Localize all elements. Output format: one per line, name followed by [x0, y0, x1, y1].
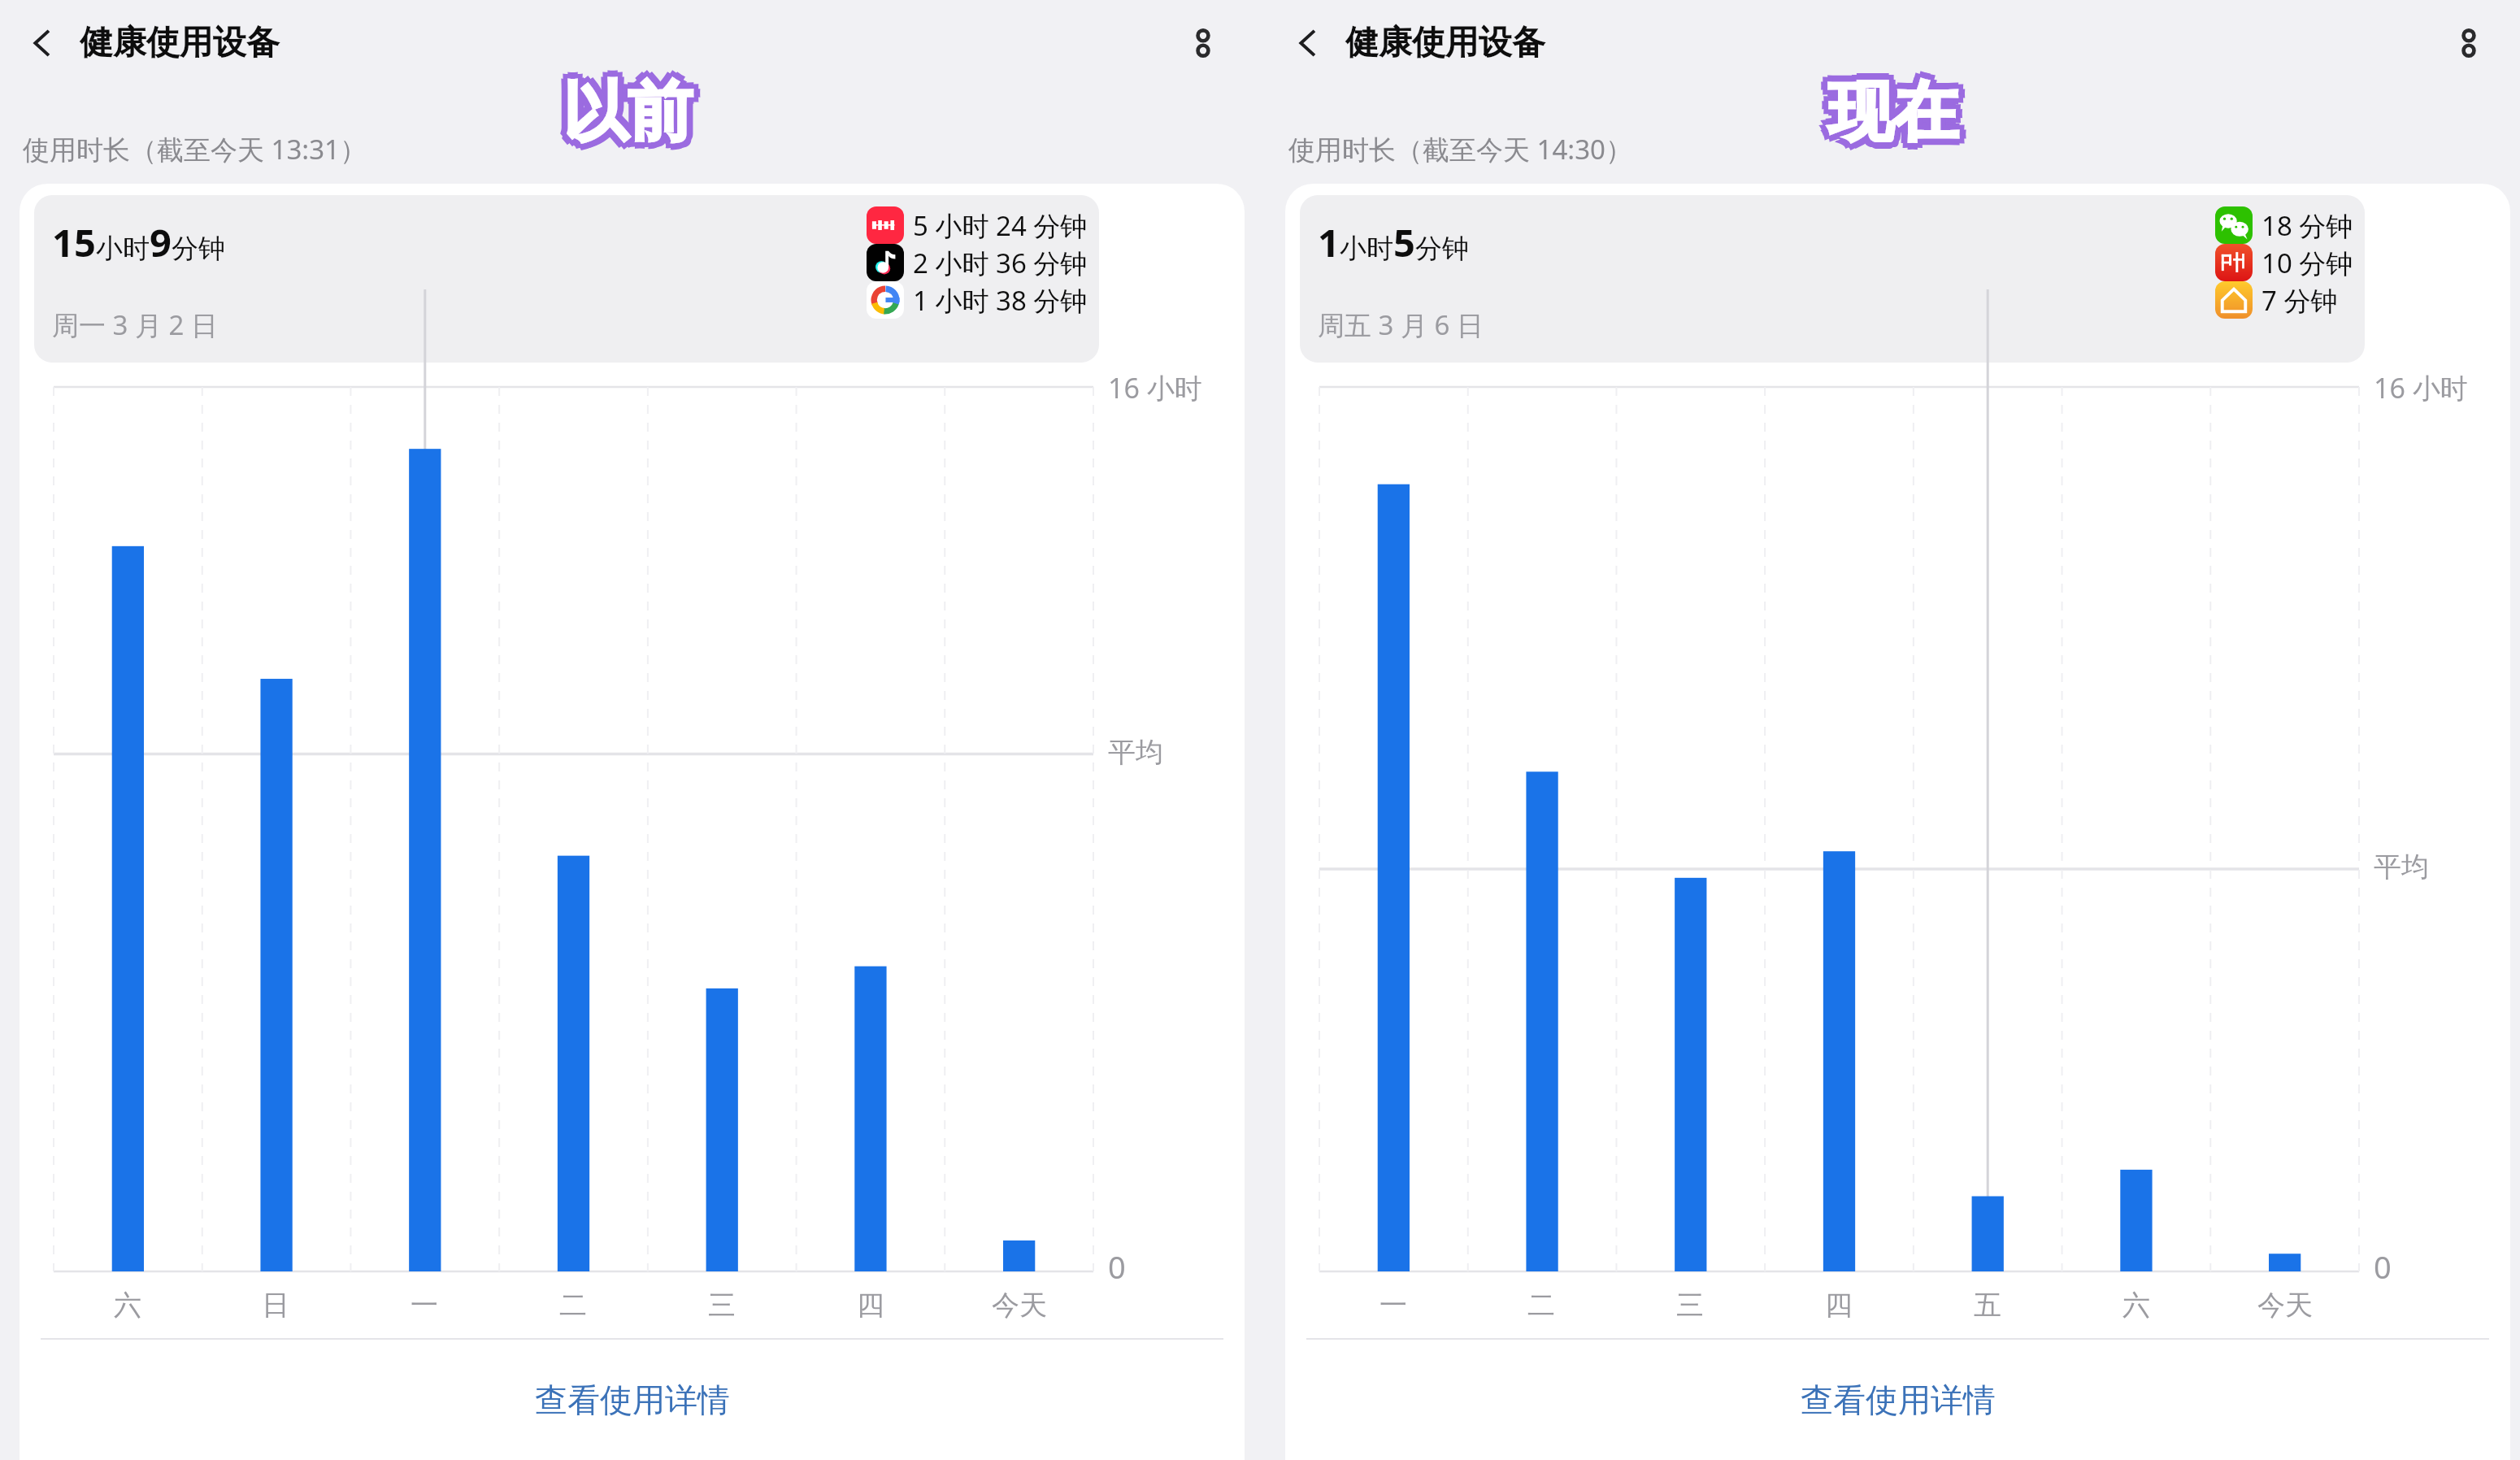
staticText: 以前 — [563, 67, 693, 150]
staticText: 现在 — [1832, 76, 1962, 158]
staticText: 1 小时 38 分钟 — [913, 282, 1088, 319]
staticText: 今天 — [2257, 1288, 2313, 1323]
staticText: 二 — [1527, 1288, 1555, 1323]
staticText: 以前 — [556, 72, 686, 154]
staticText: 10 分钟 — [2261, 245, 2353, 281]
staticText: 以前 — [563, 76, 693, 158]
staticText: 三 — [708, 1288, 736, 1323]
staticText: 现在 — [1833, 76, 1963, 159]
staticText: 周五 3 月 6 日 — [1318, 306, 1484, 343]
staticText: 以前 — [567, 76, 697, 158]
staticText: 现在 — [1828, 78, 1958, 160]
staticText: 以前 — [567, 67, 697, 150]
staticText: 以前 — [563, 78, 693, 160]
staticText: 0 — [2374, 1245, 2392, 1288]
staticText: 四 — [857, 1288, 884, 1323]
staticText: 16 小时 — [2374, 369, 2468, 406]
staticText: 现在 — [1828, 76, 1958, 158]
button[interactable]: 返回 — [16, 17, 68, 69]
staticText: 现在 — [1833, 67, 1963, 149]
staticText: 以前 — [563, 65, 693, 147]
staticText: 日 — [262, 1288, 289, 1323]
staticText: 分钟 — [1415, 232, 1469, 266]
staticText: 查看使用详情 — [1801, 1380, 1996, 1420]
staticText: 现在 — [1823, 67, 1953, 149]
staticText: 现在 — [1824, 72, 1954, 154]
staticText: 健康使用设备 — [80, 22, 280, 64]
staticText: 5 — [1393, 216, 1415, 268]
staticText: 现在 — [1822, 72, 1952, 154]
staticText: 现在 — [1835, 72, 1965, 154]
staticText: 9 — [150, 216, 172, 268]
staticText: 分钟 — [172, 232, 225, 266]
staticText: 18 分钟 — [2261, 207, 2353, 244]
staticText: 周一 3 月 2 日 — [52, 306, 219, 343]
staticText: 六 — [2122, 1288, 2150, 1323]
button[interactable]: 查看使用详情 — [1285, 1340, 2510, 1460]
staticText: 以前 — [558, 76, 688, 159]
staticText: 现在 — [1828, 65, 1958, 147]
staticText: 四 — [1825, 1288, 1853, 1323]
staticText: 平均 — [1108, 735, 1163, 770]
button[interactable]: 查看使用详情 — [20, 1340, 1245, 1460]
staticText: 2 小时 36 分钟 — [913, 245, 1088, 281]
staticText: 以前 — [558, 67, 689, 150]
staticText: 1 — [1318, 216, 1340, 268]
staticText: 现在 — [1828, 72, 1958, 154]
staticText: 小时 — [96, 232, 150, 266]
staticText: 16 小时 — [1108, 369, 1202, 406]
staticText: 查看使用详情 — [535, 1380, 730, 1420]
staticText: 以前 — [563, 72, 693, 154]
staticText: 以前 — [567, 72, 697, 154]
staticText: 现在 — [1824, 67, 1954, 150]
staticText: 现在 — [1823, 76, 1953, 159]
staticText: 今天 — [992, 1288, 1047, 1323]
button[interactable]: 更多选项 — [1175, 15, 1232, 72]
staticText: 以前 — [567, 76, 697, 159]
staticText: 以前 — [567, 67, 697, 149]
staticText: 健康使用设备 — [1345, 22, 1545, 64]
staticText: 使用时长（截至今天 13:31） — [23, 131, 367, 167]
staticText: 以前 — [569, 72, 699, 154]
staticText: 平均 — [2374, 849, 2429, 884]
staticText: 现在 — [1832, 67, 1962, 150]
staticText: 15 — [52, 216, 96, 268]
staticText: 以前 — [558, 72, 689, 154]
staticText: 0 — [1108, 1245, 1126, 1288]
button[interactable]: 返回 — [1282, 17, 1334, 69]
staticText: 二 — [559, 1288, 587, 1323]
staticText: 现在 — [1828, 67, 1958, 150]
staticText: 以前 — [558, 67, 688, 149]
staticText: 一 — [1379, 1288, 1407, 1323]
staticText: 现在 — [1824, 76, 1954, 158]
staticText: 小时 — [1340, 232, 1393, 266]
staticText: 三 — [1676, 1288, 1704, 1323]
staticText: 5 小时 24 分钟 — [913, 207, 1088, 244]
button[interactable]: 更多选项 — [2440, 15, 2497, 72]
staticText: 一 — [411, 1288, 438, 1323]
staticText: 使用时长（截至今天 14:30） — [1288, 131, 1632, 167]
staticText: 7 分钟 — [2261, 282, 2338, 319]
staticText: 以前 — [558, 76, 689, 158]
staticText: 六 — [114, 1288, 141, 1323]
staticText: 现在 — [1832, 72, 1962, 154]
staticText: 五 — [1974, 1288, 2001, 1323]
